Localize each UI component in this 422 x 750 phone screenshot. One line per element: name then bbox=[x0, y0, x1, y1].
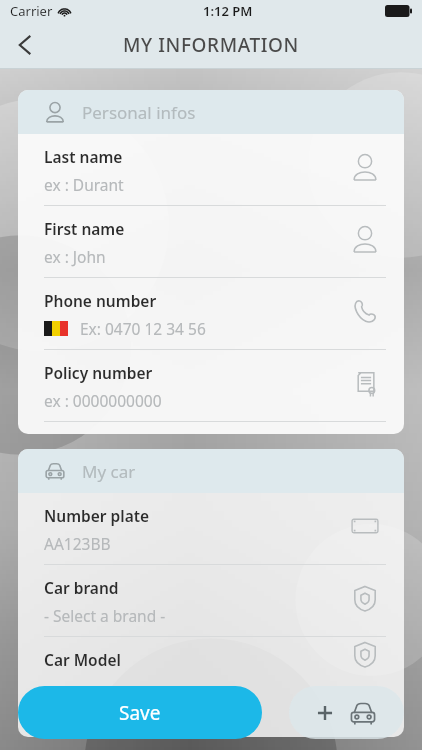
staticText: ex : Durant bbox=[44, 174, 124, 195]
staticText: - Select a brand - bbox=[44, 605, 166, 626]
staticText: Car Model bbox=[44, 649, 121, 670]
button[interactable]: Add a car bbox=[289, 686, 404, 739]
staticText: Car brand bbox=[44, 577, 119, 598]
staticText: My car bbox=[82, 460, 136, 483]
staticText: MY INFORMATION bbox=[123, 32, 299, 58]
staticText: Personal infos bbox=[82, 101, 196, 124]
staticText: ex : 0000000000 bbox=[44, 390, 162, 411]
button[interactable]: Phone number bbox=[44, 278, 386, 350]
staticText: Phone number bbox=[44, 290, 157, 311]
button[interactable]: Number plate bbox=[44, 493, 386, 565]
button[interactable]: Policy number bbox=[44, 350, 386, 422]
staticText: ex : John bbox=[44, 246, 106, 267]
staticText: Last name bbox=[44, 146, 123, 167]
staticText: Ex: 0470 12 34 56 bbox=[80, 318, 206, 339]
staticText: AA123BB bbox=[44, 533, 111, 554]
button[interactable]: Last name bbox=[44, 134, 386, 206]
staticText: Policy number bbox=[44, 362, 153, 383]
button[interactable]: Car brand bbox=[44, 565, 386, 637]
staticText: Number plate bbox=[44, 505, 150, 526]
button[interactable]: Save bbox=[18, 686, 262, 739]
button[interactable]: Car Model bbox=[44, 637, 386, 677]
button[interactable]: Back bbox=[4, 23, 48, 67]
staticText: Carrier bbox=[10, 2, 53, 20]
staticText: Save bbox=[119, 700, 161, 726]
button[interactable]: First name bbox=[44, 206, 386, 278]
staticText: 1:12 PM bbox=[203, 2, 253, 20]
staticText: First name bbox=[44, 218, 125, 239]
